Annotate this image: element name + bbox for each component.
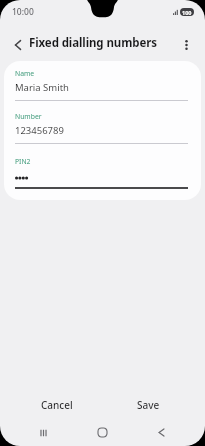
staticText: Fixed dialling numbers: [29, 35, 157, 51]
button[interactable]: Back: [132, 419, 191, 446]
staticText: 100: [182, 9, 192, 16]
staticText: Save: [137, 398, 160, 412]
staticText: Number: [15, 112, 42, 121]
button[interactable]: Save: [102, 392, 194, 418]
button[interactable]: More options: [174, 33, 198, 57]
button[interactable]: Home: [73, 419, 132, 446]
staticText: PIN2: [15, 157, 31, 166]
button[interactable]: Navigate up: [6, 33, 30, 57]
staticText: 10:00: [12, 6, 34, 18]
button[interactable]: Cancel: [11, 392, 102, 418]
staticText: Maria Smith: [15, 81, 69, 94]
button[interactable]: Recent apps: [13, 419, 73, 446]
staticText: 123456789: [15, 124, 64, 137]
staticText: Name: [15, 69, 35, 78]
staticText: Cancel: [41, 398, 73, 412]
